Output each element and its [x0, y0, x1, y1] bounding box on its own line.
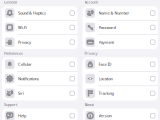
staticText: Privacy — [84, 51, 97, 56]
button[interactable]: Name & Number — [82, 6, 158, 20]
staticText: Version — [98, 113, 111, 118]
button[interactable]: Siri — [2, 86, 77, 100]
button[interactable]: Help — [2, 108, 77, 120]
staticText: Payment — [98, 39, 113, 45]
staticText: About — [84, 102, 93, 107]
staticText: Help — [18, 113, 26, 118]
staticText: General — [4, 0, 17, 5]
staticText: Tracking — [98, 91, 113, 96]
button[interactable]: Notifications — [2, 72, 77, 86]
staticText: Password — [98, 25, 115, 30]
staticText: Siri — [18, 91, 24, 96]
button[interactable]: Sound & Haptics — [2, 6, 77, 20]
button[interactable]: Payment — [82, 35, 158, 49]
staticText: Location — [98, 76, 112, 81]
staticText: Face ID — [98, 61, 111, 67]
staticText: Notifications — [18, 76, 39, 81]
button[interactable]: Wi-Fi — [2, 20, 77, 35]
staticText: Name & Number — [98, 10, 129, 16]
staticText: Privacy — [18, 39, 31, 45]
button[interactable]: Password — [82, 20, 158, 35]
staticText: Account — [84, 0, 97, 5]
button[interactable]: Tracking — [82, 86, 158, 100]
staticText: Cellular — [18, 61, 32, 67]
button[interactable]: Privacy — [2, 35, 77, 49]
staticText: Preferences — [4, 51, 23, 56]
staticText: Sound & Haptics — [18, 10, 46, 16]
staticText: Support — [4, 102, 17, 107]
button[interactable]: Cellular — [2, 57, 77, 72]
button[interactable]: Location — [82, 72, 158, 86]
button[interactable]: Face ID — [82, 57, 158, 72]
staticText: Wi-Fi — [18, 25, 27, 30]
button[interactable]: Version — [82, 108, 158, 120]
